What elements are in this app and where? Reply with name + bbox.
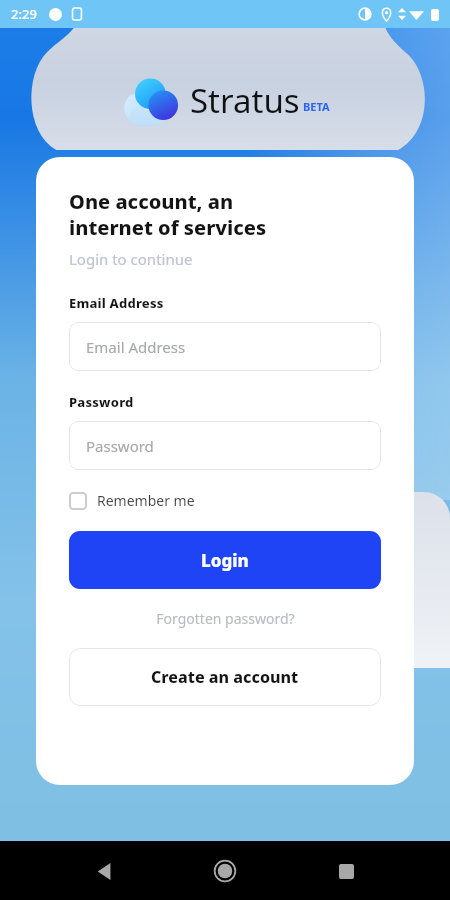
- staticText: Password: [69, 393, 134, 411]
- staticText: 2:29: [11, 5, 37, 23]
- staticText: Password: [86, 436, 154, 456]
- staticText: Stratus: [190, 78, 300, 123]
- button[interactable]: Recents: [326, 851, 366, 891]
- button[interactable]: Password: [69, 421, 381, 470]
- staticText: Login: [201, 549, 249, 572]
- staticText: BETA: [303, 99, 330, 114]
- button[interactable]: Back: [84, 851, 124, 891]
- staticText: Create an account: [151, 666, 299, 688]
- staticText: Email Address: [86, 337, 186, 357]
- button[interactable]: Create an account: [69, 648, 381, 706]
- staticText: One account, an internet of services: [69, 188, 267, 240]
- staticText: Remember me: [97, 491, 195, 510]
- button[interactable]: Forgotten password?: [69, 609, 381, 628]
- button[interactable]: Home: [205, 851, 245, 891]
- button[interactable]: Login: [69, 531, 381, 589]
- button[interactable]: Email Address: [69, 322, 381, 371]
- staticText: ar Al: [360, 568, 396, 588]
- button[interactable]: Remember me: [69, 491, 195, 510]
- staticText: Login to continue: [69, 249, 193, 269]
- staticText: Forgotten password?: [156, 609, 295, 628]
- staticText: Email Address: [69, 294, 164, 312]
